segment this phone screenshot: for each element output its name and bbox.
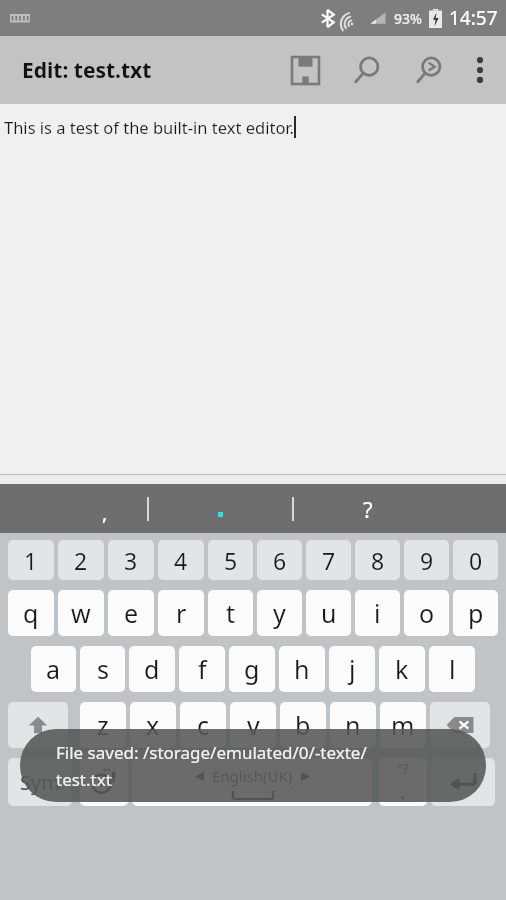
staticText: v [247, 708, 260, 742]
button[interactable]: 1 [8, 538, 54, 580]
staticText: h [294, 652, 310, 686]
button[interactable]: x [130, 700, 176, 748]
button[interactable]: p [453, 588, 498, 636]
button[interactable]: More options [460, 36, 500, 104]
other: Shift [27, 714, 49, 736]
button[interactable]: n [330, 700, 376, 748]
button[interactable]: 7 [306, 538, 351, 580]
staticText: . [400, 778, 406, 805]
staticText: , [102, 499, 108, 526]
staticText: English(UK) [212, 766, 293, 786]
button[interactable]: w [58, 588, 104, 636]
staticText: Sym [20, 769, 60, 796]
button[interactable]: 3 [108, 538, 154, 580]
other: Voice input [89, 767, 119, 797]
staticText: e [124, 596, 139, 630]
button[interactable]: 0 [453, 538, 498, 580]
button[interactable]: 5 [208, 538, 253, 580]
staticText: k [395, 652, 409, 686]
button[interactable]: Search next [398, 36, 460, 104]
staticText: ? [363, 494, 373, 524]
button[interactable]: t [208, 588, 253, 636]
button[interactable]: 4 [158, 538, 204, 580]
button[interactable]: z [80, 700, 126, 748]
staticText: f [198, 652, 207, 686]
button[interactable]: Voice input [80, 756, 128, 806]
button[interactable]: l [429, 644, 475, 692]
staticText: x [146, 708, 160, 742]
staticText: l [449, 652, 456, 686]
staticText: m [391, 708, 415, 742]
staticText: Edit: test.txt [22, 56, 152, 85]
staticText: 2 [74, 545, 88, 576]
button[interactable]: g [229, 644, 275, 692]
staticText: c [197, 708, 210, 742]
staticText: b [295, 708, 311, 742]
button[interactable]: q [8, 588, 54, 636]
button[interactable]: Shift [8, 700, 68, 748]
button[interactable]: j [329, 644, 375, 692]
staticText: t [226, 596, 236, 630]
staticText: 93% [394, 9, 422, 28]
staticText: This is a test of the built-in text edit… [4, 116, 294, 138]
staticText: i [374, 596, 381, 630]
button[interactable]: m [380, 700, 426, 748]
staticText: n [345, 708, 361, 742]
button[interactable]: c [180, 700, 226, 748]
button[interactable]: "? [379, 756, 427, 806]
staticText: y [273, 596, 286, 630]
staticText: s [97, 652, 109, 686]
button[interactable]: Search [336, 36, 398, 104]
button[interactable]: e [108, 588, 154, 636]
staticText: u [321, 596, 337, 630]
other: Backspace [446, 716, 474, 734]
staticText: q [23, 596, 39, 630]
staticText: 7 [322, 545, 336, 576]
button[interactable]: d [129, 644, 175, 692]
button[interactable]: English(UK) [132, 756, 372, 806]
staticText: a [46, 652, 61, 686]
staticText: 3 [124, 545, 138, 576]
button[interactable]: 9 [404, 538, 449, 580]
staticText: d [144, 652, 160, 686]
staticText: 9 [420, 545, 434, 576]
button[interactable]: Backspace [430, 700, 490, 748]
staticText: o [419, 596, 435, 630]
staticText: File saved: /storage/emulated/0/-texte/ [56, 741, 367, 764]
button[interactable]: f [179, 644, 225, 692]
button[interactable]: i [355, 588, 400, 636]
button[interactable]: s [80, 644, 125, 692]
button[interactable]: k [379, 644, 425, 692]
button[interactable]: 6 [257, 538, 302, 580]
button[interactable]: y [257, 588, 302, 636]
button[interactable]: 8 [355, 538, 400, 580]
staticText: z [97, 708, 109, 742]
staticText: 5 [224, 545, 238, 576]
staticText: 1 [24, 545, 38, 576]
staticText: 6 [273, 545, 287, 576]
button[interactable]: u [306, 588, 351, 636]
staticText: r [176, 596, 187, 630]
button[interactable]: Save [274, 36, 336, 104]
button[interactable]: a [31, 644, 76, 692]
staticText: p [468, 596, 484, 630]
staticText: test.txt [56, 768, 112, 791]
button[interactable]: o [404, 588, 449, 636]
button[interactable]: b [280, 700, 326, 748]
staticText: j [349, 652, 356, 686]
button[interactable]: h [279, 644, 325, 692]
other: Enter [448, 771, 478, 793]
staticText: w [71, 596, 91, 630]
staticText: 8 [371, 545, 385, 576]
button[interactable]: Sym [8, 756, 72, 806]
button[interactable]: v [230, 700, 276, 748]
staticText: g [244, 652, 260, 686]
staticText: "? [397, 759, 409, 778]
staticText: 14:57 [449, 5, 498, 31]
button[interactable]: 2 [58, 538, 104, 580]
button[interactable]: r [158, 588, 204, 636]
staticText: 0 [469, 545, 483, 576]
staticText: 4 [174, 545, 188, 576]
button[interactable]: Enter [431, 756, 495, 806]
